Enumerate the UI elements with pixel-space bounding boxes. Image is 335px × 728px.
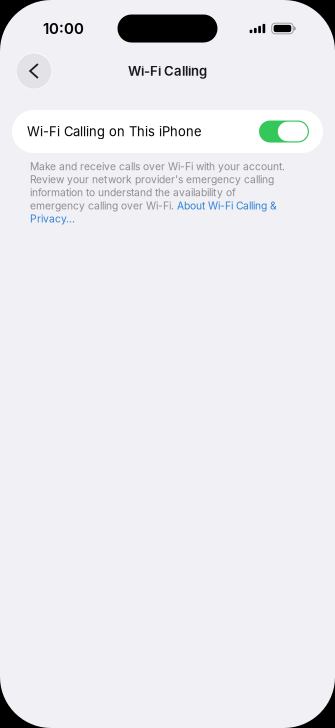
- button[interactable]: Wi-Fi Calling on This iPhone: [12, 110, 323, 153]
- staticText: Wi-Fi Calling on This iPhone: [27, 124, 202, 139]
- staticText: Wi-Fi Calling: [128, 63, 207, 79]
- staticText: Make and receive calls over Wi-Fi with y…: [30, 160, 285, 225]
- button[interactable]: Back: [12, 50, 56, 92]
- staticText: 10:00: [43, 19, 84, 38]
